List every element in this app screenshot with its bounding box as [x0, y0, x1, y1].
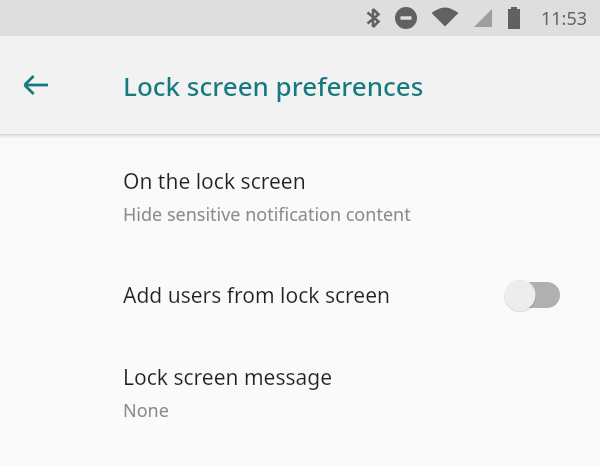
- button[interactable]: Add users from lock screen: [0, 269, 600, 321]
- staticText: Add users from lock screen: [123, 281, 504, 310]
- staticText: Lock screen preferences: [123, 68, 424, 103]
- button[interactable]: Lock screen message: [0, 359, 600, 427]
- staticText: On the lock screen: [123, 167, 306, 196]
- button[interactable]: Back: [0, 49, 72, 121]
- staticText: Lock screen message: [123, 363, 333, 392]
- button[interactable]: On the lock screen: [0, 163, 600, 231]
- staticText: None: [123, 398, 169, 423]
- staticText: 11:53: [541, 6, 588, 31]
- staticText: Hide sensitive notification content: [123, 202, 411, 227]
